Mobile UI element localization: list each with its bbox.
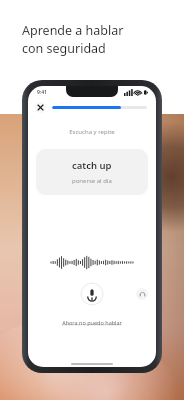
staticText: 9:41 xyxy=(37,89,47,96)
staticText: ponerse al día xyxy=(72,177,112,185)
staticText: catch up xyxy=(72,159,112,172)
button[interactable]: Ahora no puedo hablar xyxy=(28,318,156,327)
button[interactable]: catch up xyxy=(36,149,148,195)
staticText: Escucha y repite xyxy=(28,128,156,136)
button[interactable]: Close xyxy=(35,102,46,113)
staticText: Aprende a hablar xyxy=(22,22,124,39)
button[interactable]: Record with microphone xyxy=(80,282,104,306)
staticText: con seguridad xyxy=(22,40,106,57)
button[interactable]: Headphones xyxy=(136,288,148,300)
